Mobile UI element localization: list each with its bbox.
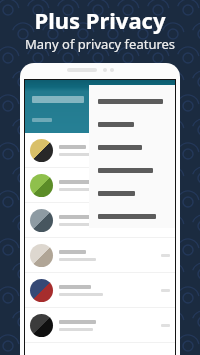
staticText: Many of privacy features: [0, 35, 200, 53]
button[interactable]: [98, 182, 175, 205]
button[interactable]: [25, 273, 175, 307]
button[interactable]: [25, 168, 175, 202]
button[interactable]: [98, 113, 175, 136]
button[interactable]: [98, 136, 175, 159]
button[interactable]: [25, 133, 175, 167]
button[interactable]: [98, 205, 175, 228]
button[interactable]: [98, 159, 175, 182]
button[interactable]: [98, 90, 175, 113]
button[interactable]: [25, 203, 175, 237]
button[interactable]: [25, 308, 175, 342]
staticText: Plus Privacy: [0, 5, 200, 35]
button[interactable]: [25, 238, 175, 272]
